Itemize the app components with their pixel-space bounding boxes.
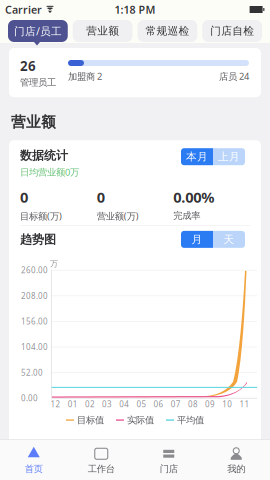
staticText: 常规巡检 bbox=[145, 24, 189, 37]
staticText: 本月 bbox=[186, 150, 208, 163]
button[interactable]: 门店/员工 bbox=[8, 20, 68, 42]
staticText: 260.00 bbox=[21, 265, 48, 275]
staticText: 数据统计 bbox=[20, 148, 68, 163]
button[interactable]: 天 bbox=[213, 231, 245, 248]
staticText: 0.00% bbox=[173, 187, 214, 207]
staticText: 07 bbox=[171, 399, 181, 409]
staticText: 目标值 bbox=[77, 414, 104, 426]
staticText: 我的 bbox=[227, 463, 245, 475]
staticText: 上月 bbox=[218, 150, 240, 163]
staticText: 0 bbox=[20, 187, 28, 207]
staticText: 01 bbox=[68, 399, 78, 409]
staticText: 0 bbox=[97, 187, 105, 207]
staticText: 04 bbox=[119, 399, 129, 409]
staticText: 店员 24 bbox=[219, 70, 249, 82]
staticText: 156.00 bbox=[21, 316, 48, 327]
staticText: 趋势图 bbox=[20, 232, 56, 247]
staticText: 完成率 bbox=[173, 210, 200, 221]
button[interactable]: 月 bbox=[181, 231, 213, 248]
staticText: 26 bbox=[20, 57, 36, 75]
staticText: 工作台 bbox=[88, 463, 115, 475]
staticText: 11 bbox=[239, 399, 249, 409]
staticText: 02 bbox=[85, 399, 95, 409]
staticText: 12 bbox=[51, 399, 61, 409]
staticText: 208.00 bbox=[21, 290, 48, 301]
staticText: 管理员工 bbox=[20, 77, 56, 88]
staticText: 104.00 bbox=[21, 342, 48, 352]
staticText: 门店/员工 bbox=[14, 24, 62, 38]
staticText: 52.00 bbox=[21, 367, 43, 378]
staticText: 06 bbox=[154, 399, 164, 409]
staticText: 万 bbox=[50, 259, 58, 269]
staticText: 10 bbox=[222, 399, 232, 409]
button[interactable]: 工作台 bbox=[67, 440, 135, 480]
staticText: 加盟商 2 bbox=[68, 70, 102, 82]
staticText: 09 bbox=[205, 399, 215, 409]
staticText: 03 bbox=[102, 399, 112, 409]
staticText: 首页 bbox=[25, 463, 43, 475]
staticText: 门店 bbox=[160, 463, 178, 475]
staticText: 05 bbox=[136, 399, 146, 409]
button[interactable]: 我的 bbox=[202, 440, 270, 480]
button[interactable]: 本月 bbox=[181, 148, 213, 165]
staticText: 天 bbox=[223, 233, 234, 246]
button[interactable]: 首页 bbox=[0, 440, 67, 480]
staticText: 营业额 bbox=[86, 24, 119, 37]
staticText: 门店自检 bbox=[210, 24, 254, 37]
button[interactable]: 门店自检 bbox=[202, 20, 262, 42]
staticText: 月 bbox=[191, 233, 202, 246]
staticText: Carrier bbox=[5, 2, 42, 17]
staticText: 日均营业额0万 bbox=[20, 166, 79, 178]
button[interactable]: 门店 bbox=[135, 440, 202, 480]
staticText: 0.00 bbox=[21, 393, 38, 403]
button[interactable]: 上月 bbox=[213, 148, 245, 165]
staticText: 目标额(万) bbox=[20, 210, 62, 222]
button[interactable]: 常规巡检 bbox=[137, 20, 197, 42]
staticText: 营业额(万) bbox=[97, 210, 139, 222]
staticText: 平均值 bbox=[177, 414, 204, 426]
button[interactable]: 营业额 bbox=[73, 20, 133, 42]
staticText: 08 bbox=[188, 399, 198, 409]
staticText: 1:18 PM bbox=[114, 2, 155, 17]
staticText: 实际值 bbox=[127, 414, 154, 426]
staticText: 营业额 bbox=[11, 113, 56, 131]
